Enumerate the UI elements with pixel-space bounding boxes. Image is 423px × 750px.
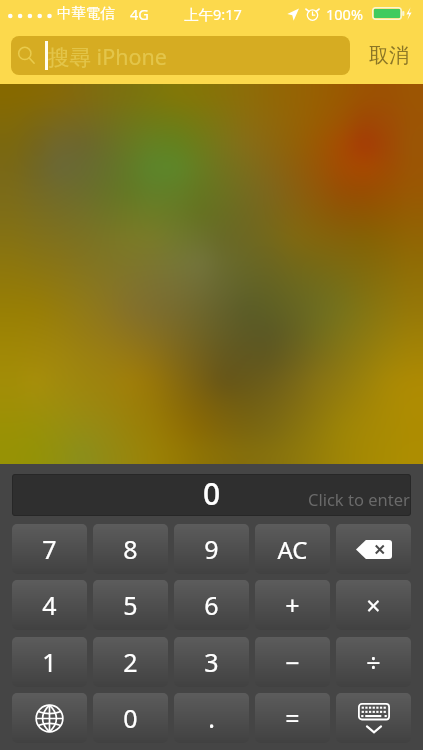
button[interactable]: 1: [12, 637, 87, 687]
staticText: ×: [366, 588, 381, 622]
staticText: Click to enter: [308, 488, 410, 510]
button[interactable]: ×: [336, 580, 411, 630]
button[interactable]: =: [255, 693, 330, 743]
staticText: 2: [123, 645, 138, 679]
button[interactable]: 6: [174, 580, 249, 630]
staticText: AC: [277, 533, 308, 566]
staticText: ÷: [366, 645, 381, 679]
button[interactable]: +: [255, 580, 330, 630]
staticText: 0: [203, 474, 221, 514]
staticText: 3: [204, 645, 219, 679]
button[interactable]: AC: [255, 524, 330, 574]
staticText: =: [285, 701, 300, 735]
button[interactable]: 3: [174, 637, 249, 687]
staticText: 7: [42, 532, 57, 566]
button[interactable]: Change language: [12, 693, 87, 743]
staticText: 4G: [130, 4, 149, 24]
staticText: 5: [123, 588, 138, 622]
button[interactable]: Hide keyboard: [336, 693, 411, 743]
staticText: 100%: [326, 4, 363, 24]
staticText: .: [208, 701, 215, 735]
staticText: −: [285, 645, 300, 679]
staticText: 9: [204, 532, 219, 566]
button[interactable]: 取消: [359, 36, 419, 75]
button[interactable]: 0: [12, 474, 411, 516]
staticText: 6: [204, 588, 219, 622]
staticText: 上午9:17: [184, 4, 242, 24]
staticText: 中華電信: [57, 4, 115, 22]
button[interactable]: 7: [12, 524, 87, 574]
button[interactable]: 0: [93, 693, 168, 743]
button[interactable]: −: [255, 637, 330, 687]
button[interactable]: 4: [12, 580, 87, 630]
staticText: 0: [123, 701, 138, 735]
button[interactable]: Delete: [336, 524, 411, 574]
staticText: 8: [123, 532, 138, 566]
button[interactable]: 9: [174, 524, 249, 574]
button[interactable]: 5: [93, 580, 168, 630]
staticText: +: [285, 588, 300, 622]
button[interactable]: ÷: [336, 637, 411, 687]
staticText: 4: [42, 588, 57, 622]
staticText: 搜尋 iPhone: [48, 42, 167, 71]
button[interactable]: 2: [93, 637, 168, 687]
staticText: 取消: [369, 43, 409, 68]
button[interactable]: 8: [93, 524, 168, 574]
button[interactable]: 搜尋 iPhone: [11, 36, 350, 75]
button[interactable]: .: [174, 693, 249, 743]
staticText: 1: [42, 645, 57, 679]
